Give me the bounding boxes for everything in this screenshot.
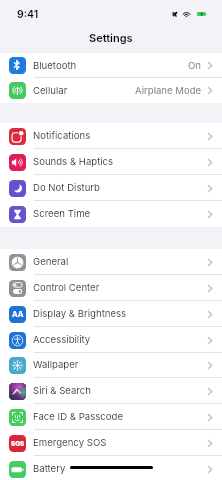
staticText: Face ID & Passcode (33, 411, 124, 423)
staticText: Accessibility (33, 334, 91, 346)
staticText: Bluetooth (33, 60, 77, 72)
staticText: Sounds & Haptics (33, 156, 114, 168)
button[interactable]: Notifications (0, 123, 222, 149)
button[interactable]: Wallpaper (0, 352, 222, 378)
staticText: Wallpaper (33, 359, 79, 371)
staticText: Siri & Search (33, 385, 91, 397)
staticText: General (33, 256, 69, 268)
button[interactable]: Do Not Disturb (0, 175, 222, 201)
button[interactable]: AA (0, 301, 222, 327)
staticText: Settings (89, 31, 133, 44)
button[interactable]: Battery (0, 456, 222, 480)
staticText: Notifications (33, 130, 91, 142)
button[interactable]: Accessibility (0, 327, 222, 353)
staticText: Emergency SOS (33, 437, 107, 449)
staticText: Cellular (33, 85, 68, 97)
button[interactable]: Bluetooth (0, 53, 222, 78)
staticText: Display & Brightness (33, 308, 127, 320)
staticText: SOS (11, 440, 25, 448)
staticText: 9:41 (17, 8, 39, 21)
staticText: Screen Time (33, 208, 91, 220)
staticText: AA (12, 310, 24, 319)
staticText: Airplane Mode (135, 85, 202, 97)
button[interactable]: Cellular (0, 78, 222, 103)
staticText: On (188, 60, 202, 72)
staticText: Battery (33, 463, 66, 475)
button[interactable]: Face ID & Passcode (0, 404, 222, 430)
button[interactable]: General (0, 249, 222, 275)
button[interactable]: Sounds & Haptics (0, 149, 222, 175)
staticText: Control Center (33, 282, 100, 294)
staticText: Do Not Disturb (33, 182, 100, 194)
button[interactable]: Siri & Search (0, 378, 222, 404)
button[interactable]: Control Center (0, 275, 222, 301)
button[interactable]: SOS (0, 430, 222, 456)
button[interactable]: Screen Time (0, 201, 222, 227)
